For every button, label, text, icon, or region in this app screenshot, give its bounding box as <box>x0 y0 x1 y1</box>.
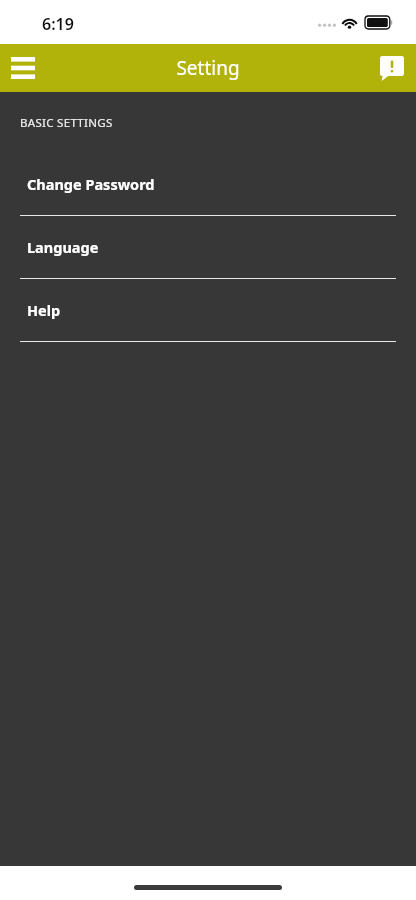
button[interactable]: Alerts <box>368 44 416 92</box>
staticText: Language <box>27 237 99 257</box>
staticText: 6:19 <box>42 13 74 35</box>
staticText: Setting <box>176 55 240 81</box>
button[interactable]: Menu <box>0 44 46 92</box>
button[interactable]: Change Password <box>0 153 416 216</box>
button[interactable]: Help <box>0 279 416 342</box>
staticText: BASIC SETTINGS <box>20 115 113 131</box>
button[interactable]: Language <box>0 216 416 279</box>
staticText: Change Password <box>27 174 155 194</box>
staticText: Help <box>27 300 61 320</box>
